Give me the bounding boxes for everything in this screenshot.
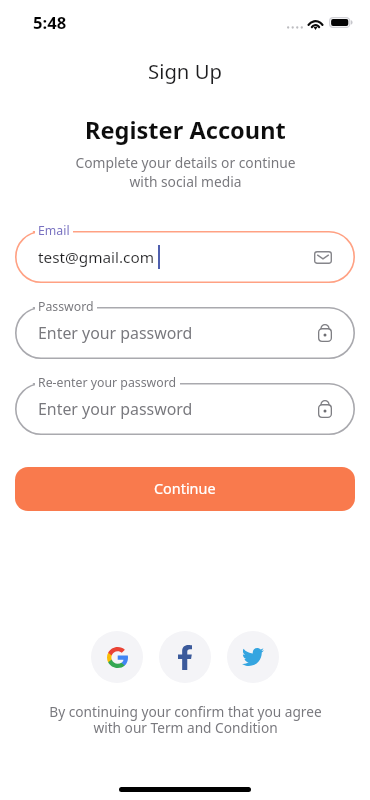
staticText: Enter your password: [38, 398, 193, 420]
staticText: Password: [38, 298, 94, 315]
button[interactable]: Email: [15, 231, 355, 283]
staticText: Enter your password: [38, 322, 193, 344]
staticText: Email: [38, 222, 70, 239]
button[interactable]: Password: [15, 307, 355, 359]
other: Toggle password visibility: [318, 400, 332, 418]
staticText: 5:48: [33, 11, 67, 34]
other: Toggle password visibility: [318, 324, 332, 342]
staticText: Register Account: [85, 114, 286, 146]
button[interactable]: Continue: [15, 467, 355, 511]
other: Email: [314, 251, 332, 264]
staticText: Complete your details or continue with s…: [75, 153, 296, 191]
button[interactable]: Sign up with Twitter: [227, 631, 279, 683]
button[interactable]: Sign up with Facebook: [159, 631, 211, 683]
button[interactable]: Sign up with Google: [91, 631, 143, 683]
button[interactable]: Re-enter your password: [15, 383, 355, 435]
staticText: By continuing your confirm that you agre…: [49, 702, 322, 738]
staticText: Re-enter your password: [38, 374, 177, 391]
staticText: Continue: [154, 479, 216, 499]
staticText: test@gmail.com: [38, 247, 154, 268]
staticText: Sign Up: [148, 57, 223, 85]
